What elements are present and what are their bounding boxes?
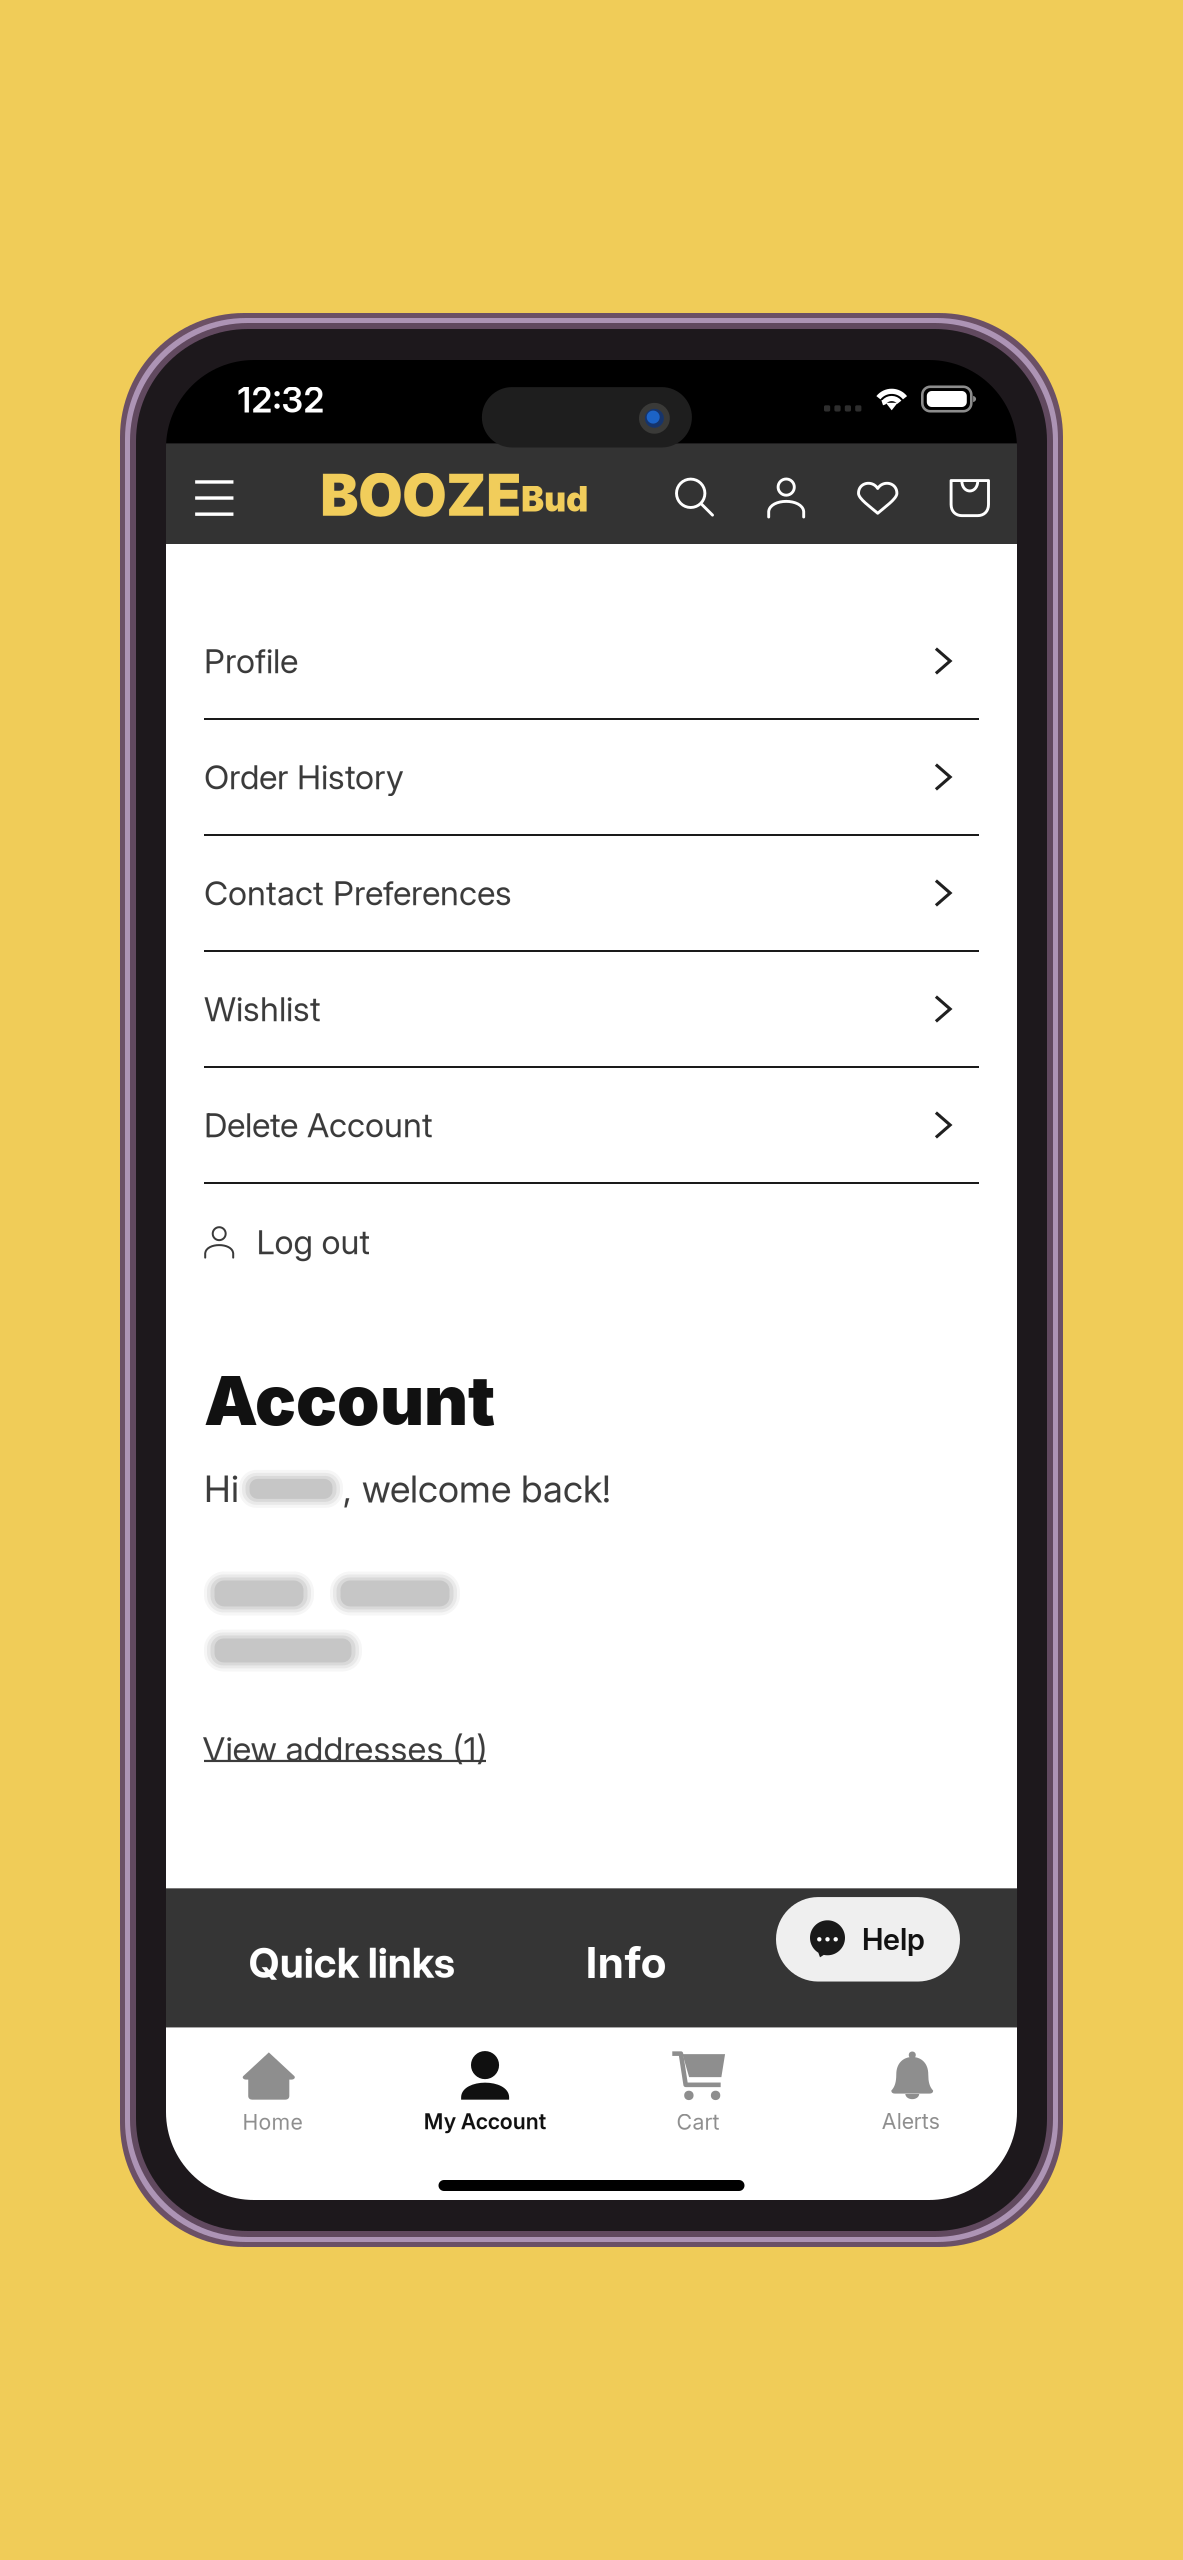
staticText: Order History	[204, 757, 404, 797]
button[interactable]: My Account	[379, 2027, 592, 2200]
button[interactable]: Wishlist	[846, 455, 910, 539]
button[interactable]: Cart	[591, 2027, 804, 2200]
staticText: Alerts	[882, 2108, 940, 2134]
staticText: Hi	[204, 1466, 239, 1511]
staticText: Info	[585, 1937, 666, 1988]
staticText: Home	[242, 2109, 302, 2135]
button[interactable]: Bag	[938, 456, 1002, 540]
staticText: My Account	[424, 2109, 547, 2134]
button[interactable]: Log out	[204, 1184, 979, 1300]
staticText: Delete Account	[204, 1105, 433, 1145]
button[interactable]: Help	[776, 1897, 960, 1981]
staticText: Help	[862, 1922, 925, 1957]
staticText: View addresses (1)	[202, 1728, 487, 1769]
staticText: BOOZE	[320, 460, 521, 530]
staticText: Profile	[204, 641, 298, 681]
staticText: Cart	[676, 2109, 719, 2135]
staticText: , welcome back!	[343, 1466, 611, 1511]
button[interactable]: Profile	[204, 604, 979, 720]
button[interactable]: Account	[754, 455, 818, 539]
button[interactable]: Order History	[204, 720, 979, 836]
staticText: Bud	[521, 478, 588, 520]
button[interactable]: Home	[166, 2027, 379, 2200]
staticText: Wishlist	[204, 989, 321, 1029]
button[interactable]: Info	[585, 1923, 666, 2002]
button[interactable]: Alerts	[804, 2027, 1017, 2200]
button[interactable]: Delete Account	[204, 1068, 979, 1184]
staticText: Contact Preferences	[204, 873, 512, 913]
button[interactable]: Quick links	[249, 1924, 455, 2002]
staticText: 12:32	[237, 379, 324, 421]
button[interactable]: Contact Preferences	[204, 836, 979, 952]
staticText: Log out	[256, 1222, 370, 1262]
staticText: Account	[204, 1359, 495, 1441]
staticText: Quick links	[249, 1938, 455, 1988]
button[interactable]: Menu	[178, 456, 250, 540]
button[interactable]: Search	[662, 455, 726, 539]
button[interactable]: View addresses (1)	[204, 1730, 486, 1776]
button[interactable]: Wishlist	[204, 952, 979, 1068]
